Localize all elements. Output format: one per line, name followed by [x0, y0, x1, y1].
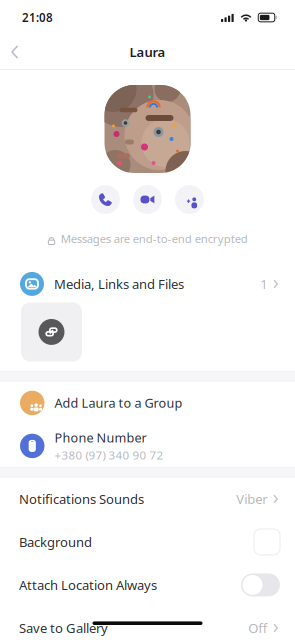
button[interactable]: Add Laura to a Group: [0, 381, 295, 424]
staticText: Background: [19, 533, 92, 551]
staticText: Media, Links and Files: [54, 275, 184, 293]
staticText: Save to Gallery: [19, 619, 108, 637]
staticText: Laura: [129, 43, 165, 61]
button[interactable]: Call: [91, 185, 120, 214]
button[interactable]: Save to Gallery: [0, 606, 295, 640]
staticText: +380 (97) 340 90 72: [54, 447, 163, 463]
staticText: 1: [260, 275, 267, 293]
button[interactable]: Attach Location Always: [0, 563, 295, 606]
button[interactable]: Phone Number: [0, 424, 295, 467]
staticText: Messages are end-to-end encrypted: [61, 231, 248, 246]
button[interactable]: Media, Links and Files: [0, 265, 295, 302]
button[interactable]: Notifications Sounds: [0, 477, 295, 520]
button[interactable]: Add to group: [175, 185, 204, 214]
staticText: Phone Number: [54, 429, 146, 446]
button[interactable]: Video call: [133, 185, 162, 214]
staticText: Add Laura to a Group: [54, 394, 182, 412]
staticText: Viber: [236, 490, 267, 508]
button[interactable]: Back: [0, 35, 30, 69]
staticText: 21:08: [22, 10, 53, 25]
staticText: Notifications Sounds: [19, 490, 144, 508]
button[interactable]: Link attachment: [21, 302, 82, 361]
staticText: Off: [248, 619, 267, 637]
button[interactable]: Background: [0, 520, 295, 563]
staticText: Attach Location Always: [19, 576, 157, 594]
